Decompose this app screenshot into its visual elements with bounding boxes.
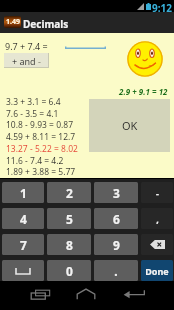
staticText: 13.27 - 5.22 = 8.02: [6, 143, 78, 155]
staticText: 10.8 - 9.93 = 0.87: [6, 119, 74, 131]
staticText: 4.59 + 8.11 = 12.7: [6, 131, 76, 143]
staticText: Decimals: [23, 17, 69, 31]
staticText: OK: [122, 118, 138, 133]
button[interactable]: ,: [141, 208, 173, 229]
button[interactable]: 7: [2, 234, 44, 255]
button[interactable]: 2: [47, 182, 91, 203]
button[interactable]: 1: [2, 182, 44, 203]
button[interactable]: + and: [4, 53, 49, 68]
staticText: 8: [66, 237, 73, 253]
button[interactable]: .: [94, 260, 138, 281]
staticText: 1.89 + 3.88 = 5.77: [6, 166, 76, 178]
staticText: 3: [113, 185, 120, 201]
button[interactable]: Home: [76, 286, 96, 300]
button[interactable]: 6: [94, 208, 138, 229]
staticText: 1.49: [6, 17, 20, 27]
staticText: ,: [156, 213, 159, 225]
staticText: 2.9 + 9.1 = 12: [119, 86, 168, 97]
staticText: 11.6 - 7.4 = 4.2: [6, 155, 64, 167]
staticText: + and: [12, 55, 38, 67]
button[interactable]: 5: [47, 208, 91, 229]
other: Space: [2, 260, 44, 281]
staticText: .: [114, 263, 118, 279]
button[interactable]: 4: [2, 208, 44, 229]
staticText: 1: [20, 185, 27, 201]
staticText: 9:12: [152, 1, 172, 13]
staticText: Done: [145, 265, 169, 277]
staticText: -: [38, 55, 41, 67]
button[interactable]: 3: [94, 182, 138, 203]
staticText: 4: [20, 211, 27, 227]
staticText: 9.7 + 7.4 =: [5, 40, 48, 52]
button[interactable]: Recents: [29, 286, 51, 300]
staticText: -: [156, 187, 159, 199]
staticText: 9: [113, 237, 120, 253]
button[interactable]: Backspace: [141, 234, 173, 255]
button[interactable]: OK: [89, 99, 170, 152]
staticText: 7: [20, 237, 27, 253]
staticText: 6: [113, 211, 120, 227]
staticText: 7.6 - 3.5 = 4.1: [6, 108, 59, 120]
staticText: 2: [66, 185, 73, 201]
staticText: 0: [66, 263, 73, 279]
button[interactable]: 0: [47, 260, 91, 281]
button[interactable]: Back: [123, 286, 145, 300]
button[interactable]: -: [141, 182, 173, 203]
button[interactable]: Space: [2, 260, 44, 281]
staticText: 5: [66, 211, 73, 227]
staticText: 3.3 + 3.1 = 6.4: [6, 96, 61, 108]
other: Backspace: [141, 234, 173, 255]
button[interactable]: Done: [141, 260, 173, 281]
button[interactable]: 8: [47, 234, 91, 255]
button[interactable]: 9: [94, 234, 138, 255]
